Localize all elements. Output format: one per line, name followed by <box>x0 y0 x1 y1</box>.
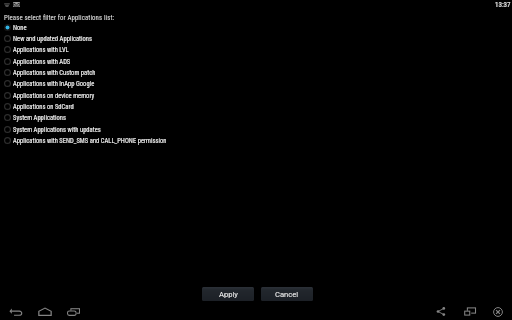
staticText: New and updated Applications <box>13 35 93 43</box>
staticText: System Applications with updates <box>13 126 101 134</box>
button[interactable]: Apply <box>202 287 254 301</box>
button[interactable]: Home <box>34 301 56 320</box>
button[interactable]: Screenshot <box>459 301 481 320</box>
staticText: System Applications <box>13 114 67 122</box>
button[interactable]: System Applications <box>4 112 512 123</box>
button[interactable]: Applications with Custom patch <box>4 67 512 78</box>
button[interactable]: None <box>4 22 512 33</box>
staticText: Apply <box>219 290 238 299</box>
button[interactable]: Applications with LVL <box>4 44 512 55</box>
staticText: Applications with ADS <box>13 58 71 66</box>
staticText: Applications on SdCard <box>13 103 74 111</box>
button[interactable]: Close <box>487 302 509 320</box>
staticText: Applications with Custom patch <box>13 69 96 77</box>
button[interactable]: Applications with SEND_SMS and CALL_PHON… <box>4 135 512 146</box>
staticText: Applications with LVL <box>13 46 69 54</box>
button[interactable]: New and updated Applications <box>4 33 512 44</box>
staticText: Cancel <box>275 290 299 299</box>
button[interactable]: Share <box>430 301 452 320</box>
button[interactable]: Back <box>5 301 27 320</box>
button[interactable]: Applications on device memory <box>4 90 512 101</box>
button[interactable]: System Applications with updates <box>4 124 512 135</box>
staticText: 13:37 <box>495 1 511 9</box>
staticText: Applications on device memory <box>13 92 95 100</box>
staticText: Applications with SEND_SMS and CALL_PHON… <box>13 137 167 145</box>
button[interactable]: Applications with InApp Google <box>4 78 512 89</box>
button[interactable]: Applications on SdCard <box>4 101 512 112</box>
button[interactable]: Applications with ADS <box>4 56 512 67</box>
staticText: Please select filter for Applications li… <box>4 14 115 22</box>
staticText: Applications with InApp Google <box>13 80 95 88</box>
button[interactable]: Recent apps <box>62 302 84 320</box>
button[interactable]: Cancel <box>261 287 313 301</box>
staticText: None <box>13 24 27 32</box>
